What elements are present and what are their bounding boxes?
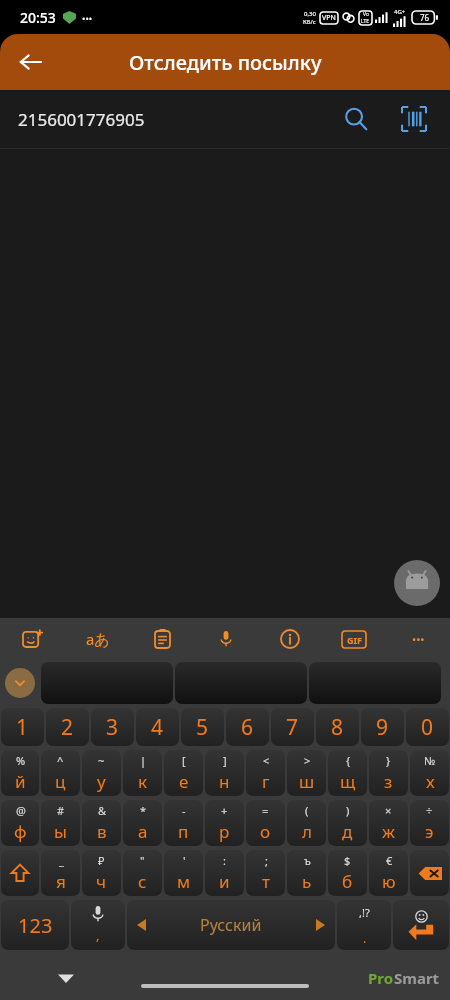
staticText: < [263,753,270,768]
staticText: - [182,803,186,818]
staticText: 2 [61,713,74,742]
staticText: ) [346,803,350,818]
button[interactable]: Back [8,40,52,84]
button[interactable]: Clipboard [130,618,194,660]
button[interactable]: > [287,750,326,796]
button[interactable]: : [205,850,244,896]
button[interactable]: ( [287,800,326,846]
button[interactable]: 0 [406,708,449,746]
staticText: 0,30 [304,10,316,18]
staticText: | [140,753,147,768]
button[interactable]: № [410,750,449,796]
button[interactable]: × [369,800,408,846]
button[interactable]: [ [164,750,203,796]
button[interactable]: Scan barcode [392,97,436,141]
button[interactable]: Info [258,618,322,660]
staticText: 3 [106,713,119,742]
button[interactable]: Voice input [71,900,125,950]
staticText: @ [16,803,26,818]
staticText: ъ [304,853,311,868]
button[interactable]: Search [334,97,378,141]
button[interactable]: Shift [1,850,39,896]
staticText: я [56,870,66,893]
button[interactable]: Stickers [0,618,65,660]
staticText: ÷ [426,803,433,818]
staticText: б [342,870,353,893]
button[interactable]: Assistant [394,560,440,606]
staticText: 2156001776905 [18,108,145,131]
button[interactable]: Voice [194,618,258,660]
button[interactable]: Symbols [1,900,69,950]
button[interactable]: Space [127,900,335,950]
button[interactable]: 2 [46,708,89,746]
staticText: ш [299,770,315,793]
button[interactable]: { [328,750,367,796]
staticText: = [262,803,269,818]
button[interactable]: - [164,800,203,846]
button[interactable]: ] [205,750,244,796]
staticText: ф [14,820,27,843]
button[interactable]: Backspace [410,850,449,896]
button[interactable]: 3 [91,708,134,746]
button[interactable]: ÷ [410,800,449,846]
button[interactable]: ' [164,850,203,896]
staticText: ; [265,853,268,868]
staticText: LTE [361,18,370,25]
staticText: 1 [16,713,29,742]
button[interactable] [41,662,173,704]
button[interactable]: Translate [65,618,130,660]
staticText: ц [55,770,66,793]
staticText: ₽ [98,853,105,868]
button[interactable]: Hide keyboard [52,964,80,992]
button[interactable]: ) [328,800,367,846]
button[interactable]: ; [246,850,285,896]
button[interactable]: 6 [226,708,269,746]
button[interactable]: ъ [287,850,326,896]
button[interactable]: = [246,800,285,846]
button[interactable]: # [41,800,80,846]
button[interactable]: ~ [82,750,121,796]
button[interactable]: Punctuation [337,900,391,950]
staticText: т [262,870,270,893]
staticText: с [138,870,147,893]
staticText: + [221,803,228,818]
staticText: аあ [86,629,110,649]
staticText: 4G+ [394,8,406,16]
button[interactable]: + [205,800,244,846]
button[interactable]: € [369,850,408,896]
staticText: й [15,770,26,793]
staticText: " [140,853,145,868]
button[interactable]: % [1,750,39,796]
staticText: & [98,803,107,818]
staticText: Русский [200,914,262,936]
staticText: 123 [18,912,53,939]
staticText: л [302,820,312,843]
button[interactable] [175,662,307,704]
button[interactable]: 9 [361,708,404,746]
button[interactable]: 1 [1,708,44,746]
button[interactable]: @ [1,800,39,846]
button[interactable]: & [82,800,121,846]
button[interactable]: $ [328,850,367,896]
button[interactable]: | [123,750,162,796]
staticText: щ [340,770,356,793]
button[interactable]: 4 [136,708,179,746]
button[interactable]: GIF [322,618,386,660]
button[interactable]: * [123,800,162,846]
button[interactable]: 7 [271,708,314,746]
button[interactable]: ^ [41,750,80,796]
staticText: € [386,853,393,868]
staticText: % [16,753,26,768]
button[interactable]: 8 [316,708,359,746]
button[interactable]: 5 [181,708,224,746]
button[interactable]: Enter [393,900,449,950]
staticText: Pro [368,968,394,988]
button[interactable]: ₽ [82,850,121,896]
button[interactable]: } [369,750,408,796]
button[interactable] [309,662,441,704]
button[interactable]: _ [41,850,80,896]
button[interactable]: " [123,850,162,896]
button[interactable]: < [246,750,285,796]
button[interactable]: Expand suggestions [5,668,35,698]
button[interactable]: More [386,618,450,660]
